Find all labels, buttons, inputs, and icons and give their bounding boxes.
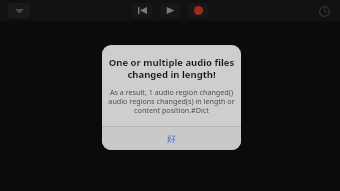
button[interactable]: 好	[102, 127, 241, 150]
button[interactable]: Expand	[8, 3, 30, 18]
button[interactable]: Play	[160, 3, 180, 18]
staticText: As a result, 1 audio region changed() au…	[106, 87, 237, 116]
button[interactable]: Settings	[317, 4, 331, 18]
staticText: 好	[167, 133, 176, 144]
button[interactable]: Skip to start	[132, 3, 152, 18]
staticText: One or multiple audio files changed in l…	[107, 56, 236, 81]
button[interactable]: Record	[188, 3, 208, 18]
